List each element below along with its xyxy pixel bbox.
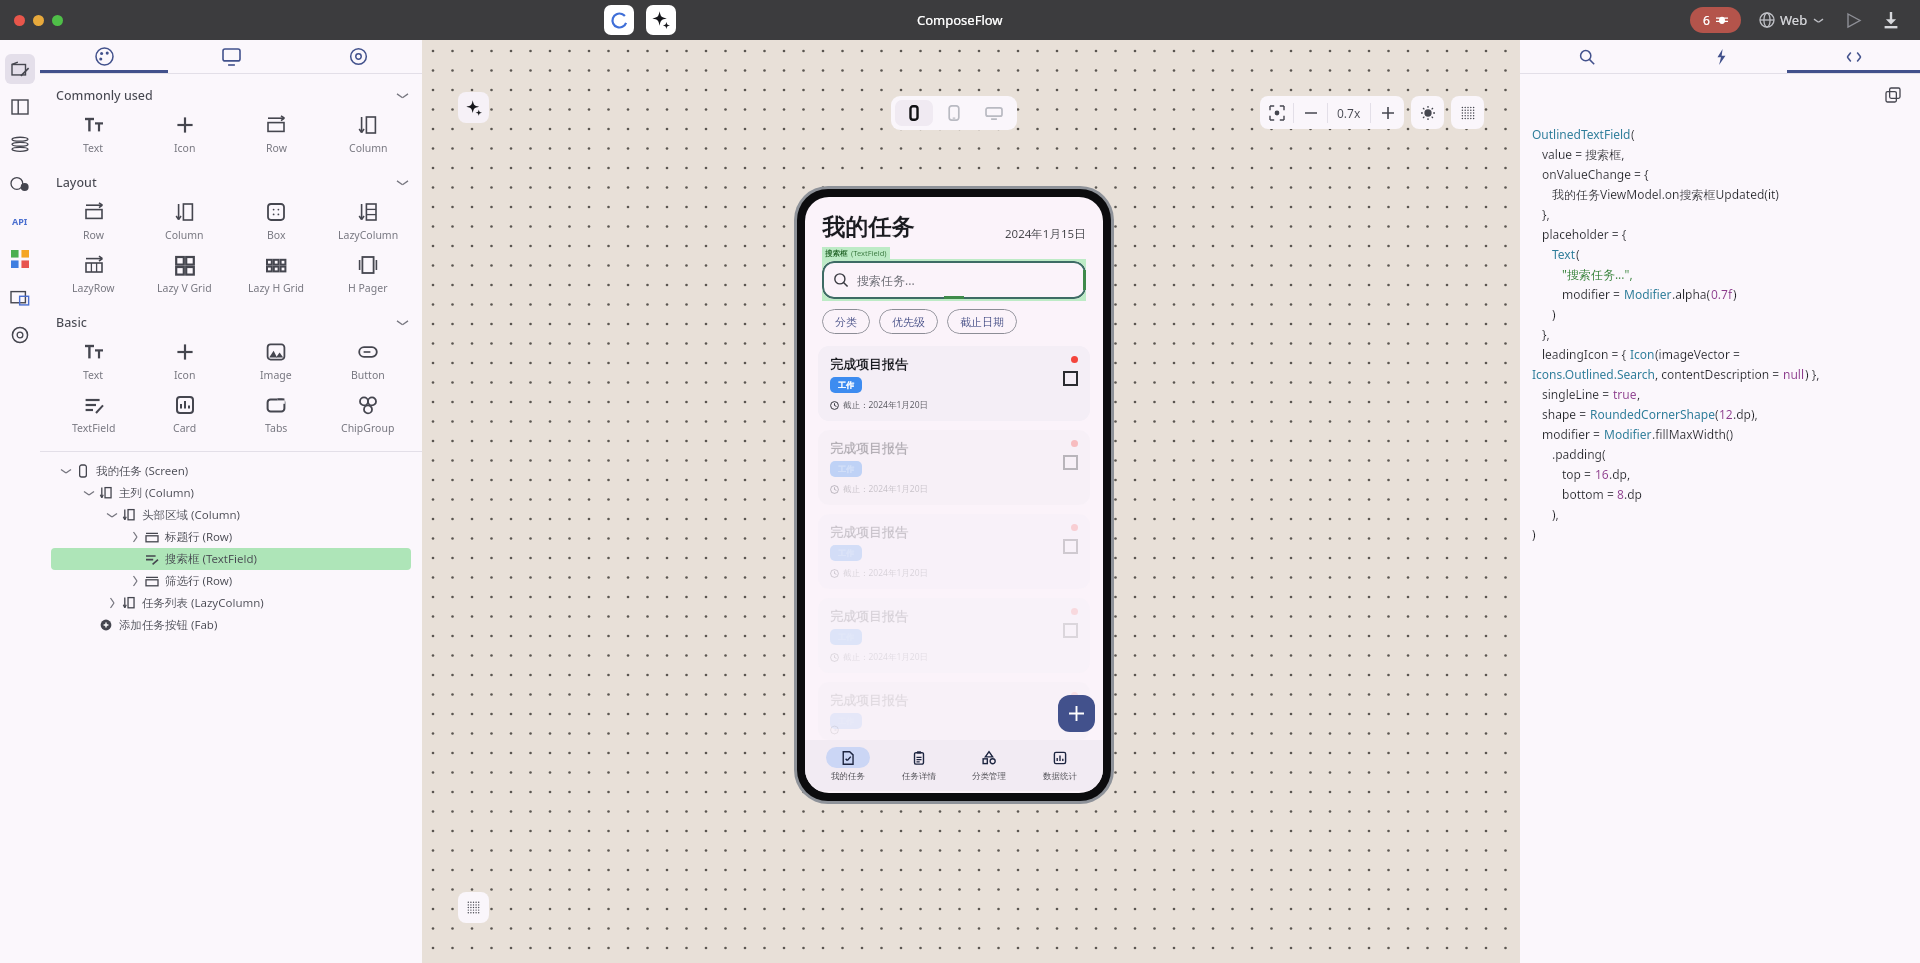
button[interactable]: 筛选行 (Row) <box>51 570 411 592</box>
button[interactable]: Window control <box>33 15 44 26</box>
button[interactable]: 搜索任务... <box>822 261 1086 299</box>
button[interactable]: Fit <box>1260 96 1293 129</box>
button[interactable]: Grid <box>1451 96 1484 129</box>
staticText: Lazy V Grid <box>157 281 212 295</box>
button[interactable]: Tabs <box>230 388 322 441</box>
staticText: 筛选行 (Row) <box>165 573 233 589</box>
staticText: 截止：2024年1月20日 <box>843 567 929 579</box>
button[interactable]: Toggle complete <box>1063 371 1078 386</box>
staticText: 0.7x <box>1337 105 1361 121</box>
button[interactable]: Text <box>48 335 139 388</box>
button[interactable]: Lazy H Grid <box>230 248 322 301</box>
button[interactable]: Add task <box>1058 695 1095 732</box>
button[interactable]: Tool <box>5 244 35 274</box>
button[interactable]: Zoom out <box>1294 96 1327 129</box>
button[interactable]: Toggle complete <box>1063 707 1078 722</box>
button[interactable]: AI <box>458 92 489 123</box>
button[interactable]: 添加任务按钮 (Fab) <box>51 614 411 636</box>
button[interactable]: Tool <box>5 282 35 312</box>
button[interactable]: Column <box>139 195 230 248</box>
button[interactable]: 标题行 (Row) <box>51 526 411 548</box>
button[interactable]: Tool <box>5 206 35 236</box>
button[interactable]: Toggle complete <box>1063 455 1078 470</box>
button[interactable]: Row <box>48 195 139 248</box>
staticText: RoundedCornerShape <box>1590 406 1715 422</box>
button[interactable]: Window control <box>52 15 63 26</box>
button[interactable]: 优先级 <box>879 309 938 334</box>
button[interactable]: Tool <box>5 320 35 350</box>
staticText: .dp <box>1624 486 1642 502</box>
staticText: ( <box>1631 126 1635 142</box>
button[interactable]: Box <box>230 195 322 248</box>
button[interactable]: Panel tab <box>168 40 295 73</box>
button[interactable]: Device <box>935 100 973 126</box>
button[interactable]: 截止日期 <box>947 309 1017 334</box>
button[interactable]: Toggle complete <box>1063 623 1078 638</box>
staticText: 搜索框 (TextField) <box>165 551 257 567</box>
button[interactable]: Card <box>139 388 230 441</box>
button[interactable]: Device <box>895 100 933 126</box>
button[interactable]: 6 <box>1690 7 1741 33</box>
button[interactable]: 任务列表 (LazyColumn) <box>51 592 411 614</box>
button[interactable]: AI assist <box>646 5 676 35</box>
button[interactable]: Text <box>48 108 139 161</box>
button[interactable]: Device <box>975 100 1013 126</box>
button[interactable]: Download <box>1880 9 1902 31</box>
button[interactable]: Tool <box>5 92 35 122</box>
button[interactable]: Run <box>1842 9 1864 31</box>
button[interactable]: Toggle complete <box>1063 539 1078 554</box>
staticText: placeholder = { <box>1542 226 1627 242</box>
button[interactable]: Tool <box>5 130 35 160</box>
staticText: Row <box>83 228 104 242</box>
button[interactable]: 搜索框 (TextField) <box>51 548 411 570</box>
button[interactable]: 我的任务 <box>820 747 876 782</box>
button[interactable]: Button <box>322 335 414 388</box>
staticText: }, <box>1542 326 1550 342</box>
button[interactable]: Refresh <box>604 5 634 35</box>
staticText: 完成项目报告 <box>830 356 908 372</box>
staticText: , <box>1637 386 1641 402</box>
button[interactable]: Code tab <box>1654 40 1787 73</box>
button[interactable]: 任务详情 <box>891 747 947 782</box>
button[interactable]: Web <box>1757 8 1826 32</box>
button[interactable]: Icon <box>139 335 230 388</box>
staticText: 分类管理 <box>972 771 1006 782</box>
button[interactable]: 数据统计 <box>1032 747 1088 782</box>
button[interactable]: 主列 (Column) <box>51 482 411 504</box>
button[interactable]: Tool <box>5 168 35 198</box>
button[interactable]: TextField <box>48 388 139 441</box>
button[interactable]: 完成项目报告 <box>818 346 1090 421</box>
button[interactable]: Row <box>230 108 322 161</box>
button[interactable]: Panel tab <box>40 40 168 73</box>
button[interactable]: H Pager <box>322 248 414 301</box>
button[interactable]: Theme <box>1411 96 1444 129</box>
button[interactable]: LazyColumn <box>322 195 414 248</box>
staticText: H Pager <box>348 281 388 295</box>
staticText: (TextField) <box>851 248 887 258</box>
staticText: .padding( <box>1552 446 1606 462</box>
button[interactable]: Code tab <box>1787 40 1920 73</box>
button[interactable]: Column <box>322 108 414 161</box>
button[interactable]: 完成项目报告 <box>818 598 1090 673</box>
button[interactable]: 0.7x <box>1328 96 1370 129</box>
staticText: ), <box>1552 506 1559 522</box>
button[interactable]: 完成项目报告 <box>818 682 1090 740</box>
button[interactable]: Code tab <box>1520 40 1654 73</box>
button[interactable]: 头部区域 (Column) <box>51 504 411 526</box>
button[interactable]: 完成项目报告 <box>818 514 1090 589</box>
button[interactable]: 分类管理 <box>961 747 1017 782</box>
button[interactable]: Zoom in <box>1371 96 1404 129</box>
button[interactable]: 我的任务 (Screen) <box>51 460 411 482</box>
button[interactable]: Grid settings <box>458 892 489 923</box>
button[interactable]: LazyRow <box>48 248 139 301</box>
button[interactable]: Window control <box>14 15 25 26</box>
button[interactable]: Tool <box>5 54 35 84</box>
button[interactable]: Icon <box>139 108 230 161</box>
button[interactable]: Copy code <box>1882 84 1904 106</box>
button[interactable]: Lazy V Grid <box>139 248 230 301</box>
button[interactable]: 分类 <box>822 309 870 334</box>
button[interactable]: Image <box>230 335 322 388</box>
button[interactable]: ChipGroup <box>322 388 414 441</box>
button[interactable]: Panel tab <box>295 40 422 73</box>
button[interactable]: 完成项目报告 <box>818 430 1090 505</box>
